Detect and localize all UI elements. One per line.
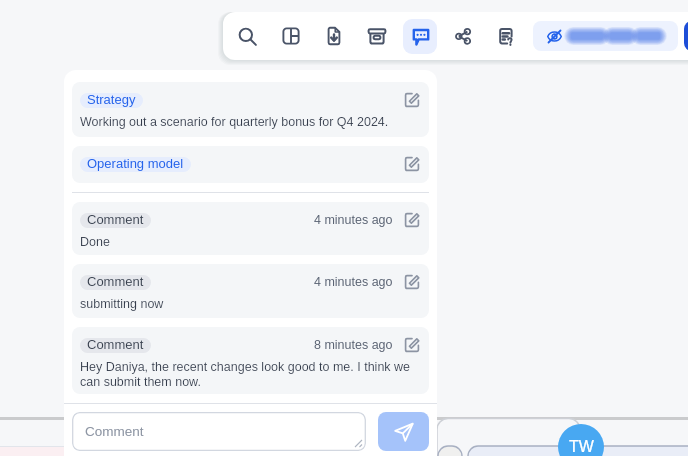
button[interactable]: Split view	[269, 12, 312, 60]
button[interactable]: Share	[441, 12, 484, 60]
button[interactable]: Comment	[72, 327, 429, 394]
staticText: 4 minutes ago	[314, 213, 393, 227]
staticText: Comment	[87, 338, 144, 352]
button[interactable]: Operating model	[72, 146, 429, 183]
button[interactable]: Help	[484, 12, 527, 60]
staticText: Operating model	[87, 157, 184, 171]
button[interactable]: Primary action	[684, 21, 688, 51]
button[interactable]: Search	[226, 12, 269, 60]
button[interactable]: Comment	[72, 264, 429, 318]
button[interactable]: Edit	[403, 155, 421, 173]
staticText: Working out a scenario for quarterly bon…	[80, 115, 423, 129]
staticText: Comment	[85, 424, 144, 439]
button[interactable]: Hidden field	[533, 21, 678, 51]
staticText: submitting now	[80, 297, 423, 311]
button[interactable]: Edit	[403, 336, 421, 354]
button[interactable]: Export	[312, 12, 355, 60]
button[interactable]: Edit	[403, 211, 421, 229]
staticText: Hey Daniya, the recent changes look good…	[80, 360, 423, 389]
staticText: 8 minutes ago	[314, 338, 393, 352]
button[interactable]: Comment	[72, 412, 366, 451]
button[interactable]: Comment	[72, 202, 429, 255]
button[interactable]: Comments	[398, 12, 441, 60]
staticText: Comment	[87, 275, 144, 289]
button[interactable]: Edit	[403, 273, 421, 291]
staticText: Strategy	[87, 93, 136, 107]
button[interactable]: Strategy	[72, 82, 429, 137]
staticText: TW	[569, 438, 594, 456]
button[interactable]: Profile TW	[558, 424, 604, 456]
button[interactable]: Send	[378, 412, 429, 451]
staticText: Comment	[87, 213, 144, 227]
staticText: 4 minutes ago	[314, 275, 393, 289]
button[interactable]: Edit	[403, 91, 421, 109]
button[interactable]: Archive	[355, 12, 398, 60]
staticText: Done	[80, 235, 423, 249]
